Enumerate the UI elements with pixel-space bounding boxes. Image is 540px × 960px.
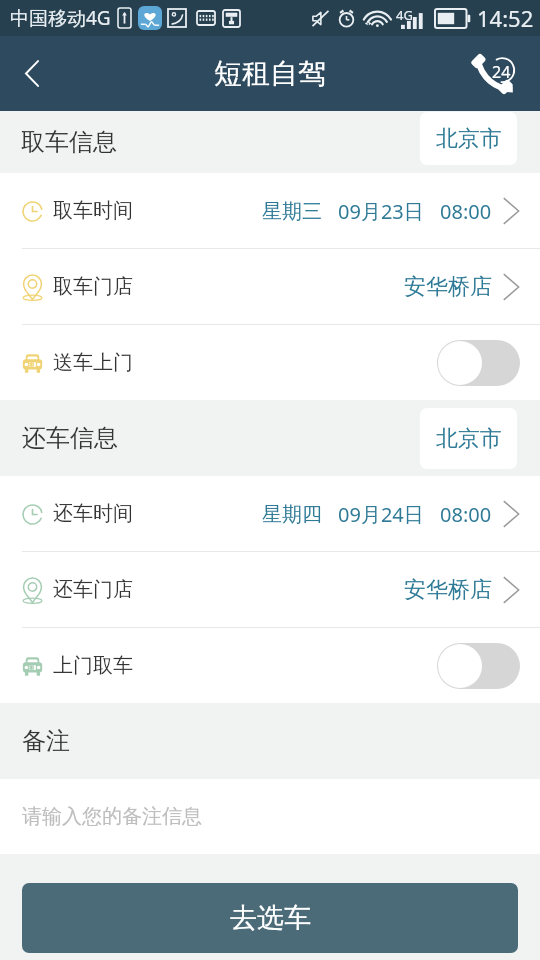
button[interactable]: 还车门店 bbox=[0, 552, 540, 627]
staticText: 09月23日 bbox=[338, 198, 424, 225]
staticText: 08:00 bbox=[440, 501, 492, 528]
staticText: 短租自驾 bbox=[214, 56, 326, 91]
button[interactable]: 请输入您的备注信息 bbox=[0, 779, 540, 854]
staticText: 4G bbox=[396, 6, 413, 24]
staticText: 安华桥店 bbox=[404, 576, 492, 604]
staticText: 星期三 bbox=[262, 199, 322, 224]
staticText: 08:00 bbox=[440, 198, 492, 225]
staticText: 请输入您的备注信息 bbox=[22, 804, 202, 829]
button[interactable]: Toggle bbox=[437, 643, 520, 689]
button[interactable]: 还车时间 bbox=[0, 476, 540, 551]
staticText: 24 bbox=[492, 61, 511, 83]
button[interactable]: Toggle bbox=[437, 340, 520, 386]
button[interactable]: 北京市 bbox=[420, 408, 517, 469]
button[interactable]: 取车门店 bbox=[0, 249, 540, 324]
button[interactable]: 上门取车 bbox=[0, 628, 540, 703]
staticText: 安华桥店 bbox=[404, 273, 492, 301]
staticText: 还车门店 bbox=[53, 577, 133, 602]
staticText: 备注 bbox=[22, 726, 70, 756]
button[interactable]: 取车时间 bbox=[0, 173, 540, 248]
button[interactable]: Customer service call bbox=[462, 36, 540, 111]
staticText: 09月24日 bbox=[338, 501, 424, 528]
staticText: 中国移动4G bbox=[10, 5, 111, 31]
button[interactable]: 送车上门 bbox=[0, 325, 540, 400]
staticText: 送车上门 bbox=[53, 350, 133, 375]
button[interactable]: Back bbox=[0, 36, 60, 111]
staticText: 星期四 bbox=[262, 502, 322, 527]
button[interactable]: 北京市 bbox=[420, 112, 517, 165]
staticText: 取车门店 bbox=[53, 274, 133, 299]
staticText: 还车时间 bbox=[53, 501, 133, 526]
staticText: 去选车 bbox=[230, 901, 311, 935]
staticText: 取车信息 bbox=[21, 127, 117, 157]
staticText: 还车信息 bbox=[22, 423, 118, 453]
staticText: 北京市 bbox=[436, 125, 502, 153]
staticText: 上门取车 bbox=[53, 653, 133, 678]
staticText: 北京市 bbox=[436, 425, 502, 453]
button[interactable]: 去选车 bbox=[22, 883, 518, 953]
staticText: 取车时间 bbox=[53, 198, 133, 223]
staticText: 14:52 bbox=[477, 3, 534, 33]
